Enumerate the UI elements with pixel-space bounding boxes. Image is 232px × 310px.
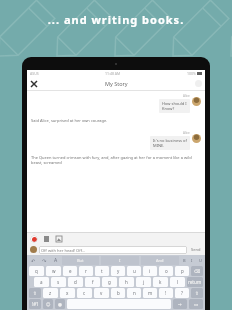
button[interactable]: g — [102, 277, 117, 287]
button[interactable]: x — [60, 288, 75, 298]
button[interactable]: l — [170, 277, 185, 287]
button[interactable]: Off with her head! Off... — [39, 246, 187, 254]
staticText: z — [49, 290, 52, 296]
button[interactable]: Account — [195, 80, 202, 87]
staticText: → — [178, 302, 182, 307]
staticText: d — [74, 279, 77, 285]
button[interactable]: It's no business of MINE. — [150, 136, 190, 150]
staticText: k — [159, 279, 162, 285]
staticText: p — [181, 268, 184, 274]
button[interactable]: s — [51, 277, 66, 287]
staticText: I — [191, 258, 193, 263]
button[interactable]: r — [79, 266, 93, 276]
button[interactable]: ↷ — [39, 256, 50, 265]
button[interactable]: ? — [175, 288, 189, 298]
staticText: U — [199, 258, 202, 263]
staticText: It's no business of MINE. — [153, 138, 187, 148]
button[interactable]: d — [68, 277, 83, 287]
button[interactable]: → — [173, 299, 187, 309]
button[interactable]: I — [101, 256, 139, 265]
button[interactable]: I — [188, 256, 196, 265]
button[interactable]: ● — [55, 299, 65, 309]
staticText: ASUS — [30, 71, 39, 76]
staticText: ⌫ — [194, 269, 201, 274]
button[interactable]: ! — [159, 288, 173, 298]
staticText: r — [85, 268, 87, 274]
button[interactable]: ▭ — [189, 299, 203, 309]
button[interactable]: k — [153, 277, 168, 287]
button[interactable]: Record — [30, 235, 38, 243]
staticText: Alice — [183, 131, 190, 135]
staticText: How should I Know? — [162, 101, 187, 111]
button[interactable]: Close — [29, 79, 39, 89]
button[interactable]: t — [95, 266, 109, 276]
staticText: ⇧ — [33, 291, 37, 296]
button[interactable]: b — [111, 288, 125, 298]
staticText: t — [101, 268, 103, 274]
button[interactable]: n — [127, 288, 141, 298]
button[interactable]: ⌫ — [191, 266, 203, 276]
staticText: return — [188, 279, 202, 285]
button[interactable]: return — [187, 277, 203, 287]
button[interactable]: v — [94, 288, 109, 298]
staticText: y — [117, 268, 120, 274]
staticText: !#1 — [32, 301, 39, 307]
staticText: B — [183, 258, 186, 263]
button[interactable]: q — [29, 266, 44, 276]
staticText: w — [52, 268, 56, 274]
button[interactable]: Send — [190, 247, 202, 252]
button[interactable]: j — [136, 277, 151, 287]
button[interactable]: ⇧ — [29, 288, 41, 298]
button[interactable]: B — [180, 256, 188, 265]
button[interactable]: o — [159, 266, 173, 276]
staticText: ! — [165, 290, 167, 296]
staticText: 100% — [187, 71, 196, 76]
button[interactable]: f — [85, 277, 100, 287]
staticText: h — [125, 279, 128, 285]
button[interactable]: U — [196, 256, 204, 265]
staticText: e — [69, 268, 72, 274]
staticText: x — [66, 290, 69, 296]
staticText: I — [119, 258, 121, 263]
button[interactable]: ↶ — [28, 256, 39, 265]
staticText: i — [149, 268, 151, 274]
button[interactable]: And — [141, 256, 179, 265]
staticText: f — [92, 279, 94, 285]
button[interactable]: z — [43, 288, 58, 298]
staticText: u — [133, 268, 136, 274]
staticText: And — [156, 258, 164, 263]
button[interactable]: ⇧ — [191, 288, 203, 298]
staticText: b — [117, 290, 120, 296]
staticText: o — [165, 268, 168, 274]
staticText: ↶ — [31, 258, 36, 264]
staticText: 11:48 AM — [105, 71, 121, 76]
button[interactable]: Image — [55, 235, 62, 242]
staticText: g — [108, 279, 111, 285]
staticText: q — [35, 268, 38, 274]
button[interactable]: c — [77, 288, 92, 298]
button[interactable]: p — [175, 266, 189, 276]
staticText: ● — [58, 302, 62, 307]
button[interactable]: u — [127, 266, 141, 276]
button[interactable]: How should I Know? — [159, 99, 190, 113]
button[interactable]: m — [143, 288, 157, 298]
staticText: ↷ — [42, 258, 47, 264]
staticText: A — [54, 257, 58, 264]
button[interactable]: ☺ — [43, 299, 53, 309]
staticText: v — [100, 290, 103, 296]
button[interactable]: e — [63, 266, 77, 276]
staticText: My Story — [105, 80, 128, 87]
button[interactable]: But — [62, 256, 99, 265]
button[interactable]: w — [46, 266, 61, 276]
button[interactable]: h — [119, 277, 134, 287]
button[interactable]: !#1 — [29, 299, 41, 309]
button[interactable]: i — [143, 266, 157, 276]
button[interactable]: a — [34, 277, 49, 287]
staticText: ☺ — [46, 302, 51, 307]
staticText: s — [57, 279, 60, 285]
button[interactable]: y — [111, 266, 125, 276]
staticText: ⇧ — [195, 291, 199, 296]
button[interactable]: A — [50, 256, 61, 265]
